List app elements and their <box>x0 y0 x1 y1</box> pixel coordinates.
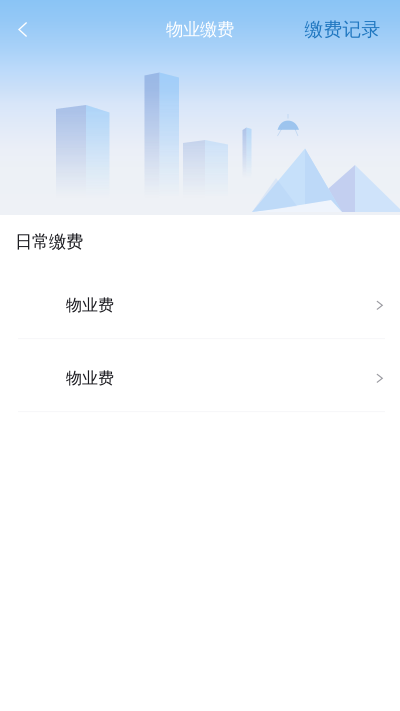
button[interactable]: 物业费 <box>0 272 400 345</box>
button[interactable]: 缴费记录 <box>296 7 389 51</box>
staticText: 物业缴费 <box>166 19 234 40</box>
staticText: 缴费记录 <box>304 18 380 41</box>
staticText: 物业费 <box>66 368 114 388</box>
button[interactable]: 物业费 <box>0 345 400 418</box>
staticText: 日常缴费 <box>15 231 83 252</box>
staticText: 物业费 <box>66 295 114 315</box>
button[interactable]: Back <box>0 7 46 51</box>
